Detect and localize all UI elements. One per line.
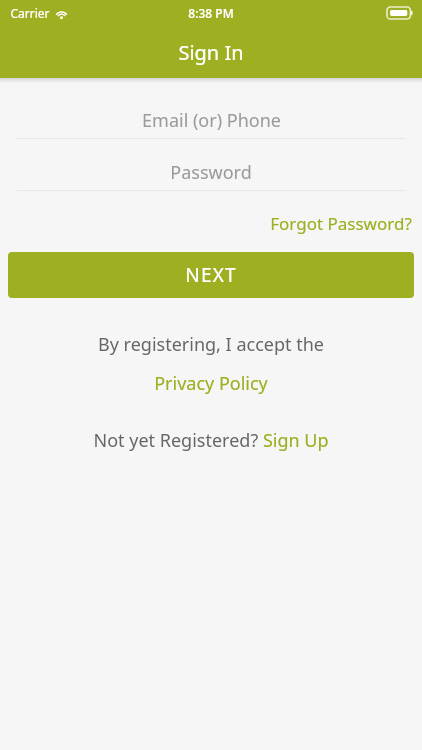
staticText: Password [170,160,252,185]
button[interactable]: Not yet Registered? Sign Up [87,426,335,455]
staticText: Forgot Password? [270,212,412,235]
button[interactable]: NEXT [8,252,414,298]
staticText: 8:38 PM [188,5,234,21]
staticText: By registering, I accept the [98,332,324,357]
button[interactable]: Password [0,154,422,206]
staticText: Carrier [10,5,50,21]
button[interactable]: Privacy Policy [148,369,274,398]
staticText: Not yet Registered? Sign Up [93,428,329,453]
staticText: NEXT [185,262,237,288]
button[interactable]: Forgot Password? [260,208,422,239]
other: Battery full [387,7,413,19]
staticText: Email (or) Phone [142,108,281,133]
staticText: Sign In [178,39,244,66]
button[interactable]: Email (or) Phone [0,102,422,154]
staticText: Privacy Policy [154,371,268,396]
other: Wi-Fi signal [55,7,68,20]
